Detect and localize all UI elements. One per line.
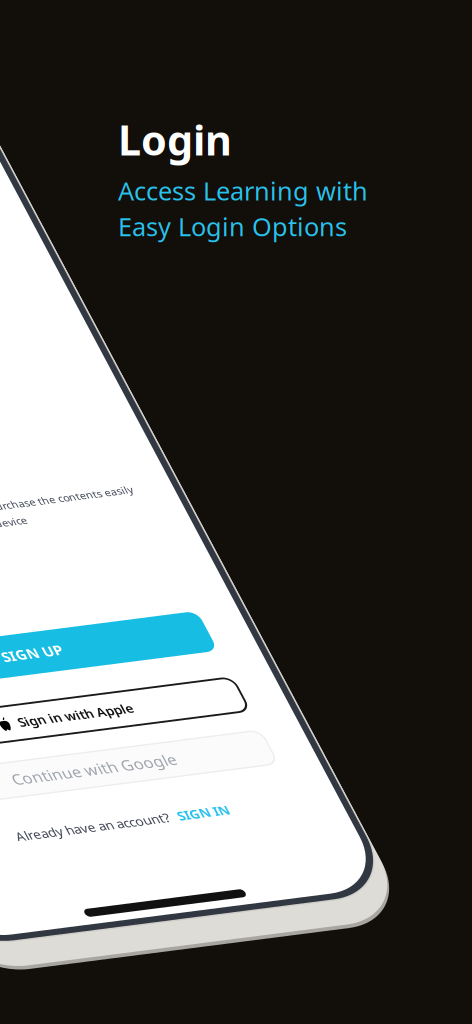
staticText: SIGN UP bbox=[186, 636, 247, 655]
button[interactable]: Sign in with Apple bbox=[40, 698, 394, 736]
staticText: Access Learning with bbox=[118, 174, 368, 207]
staticText: Continue with Google bbox=[134, 766, 299, 788]
staticText: and enjoy them on any device bbox=[127, 496, 279, 510]
staticText: Sign in with Apple bbox=[169, 708, 285, 726]
button[interactable]: SIGN UP bbox=[40, 623, 394, 668]
button[interactable]: Continue with Google bbox=[40, 758, 394, 796]
staticText: Login bbox=[118, 112, 232, 167]
staticText: Register now to purchase the contents ea… bbox=[167, 478, 394, 492]
staticText: Easy Login Options bbox=[118, 209, 347, 243]
